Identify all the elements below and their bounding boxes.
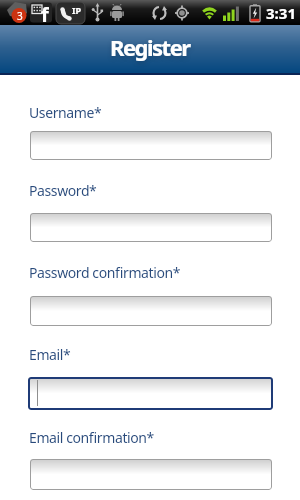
staticText: Username*: [29, 103, 102, 122]
staticText: Password confirmation*: [29, 263, 181, 282]
staticText: Email confirmation*: [29, 428, 154, 447]
button[interactable]: [30, 131, 272, 160]
button[interactable]: [28, 377, 273, 410]
staticText: Email*: [29, 345, 71, 364]
staticText: Register: [110, 32, 190, 62]
staticText: 3:31: [266, 3, 296, 23]
staticText: IP: [72, 4, 82, 16]
button[interactable]: [30, 213, 272, 242]
staticText: 3: [17, 9, 23, 23]
button[interactable]: [30, 459, 272, 490]
staticText: f: [41, 1, 49, 22]
staticText: Password*: [29, 181, 97, 200]
button[interactable]: [30, 296, 272, 326]
